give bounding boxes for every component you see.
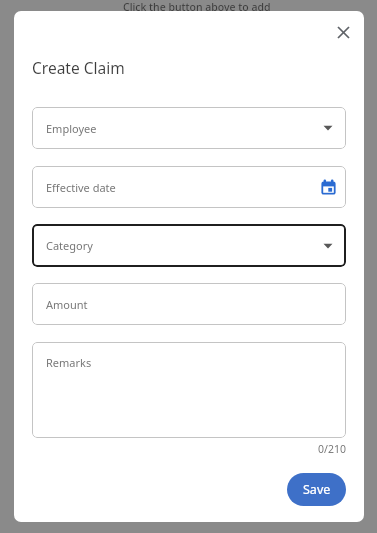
staticText: Remarks — [46, 355, 92, 370]
button[interactable]: Save — [287, 473, 346, 506]
staticText: Effective date — [46, 180, 116, 195]
button[interactable] — [328, 17, 358, 47]
button[interactable]: Amount — [32, 283, 346, 325]
staticText: Employee — [46, 121, 97, 136]
staticText: 0/210 — [318, 442, 346, 456]
button[interactable]: Category — [32, 224, 346, 267]
staticText: Amount — [46, 297, 88, 312]
staticText: Create Claim — [32, 57, 125, 78]
button[interactable]: Employee — [32, 107, 346, 149]
button[interactable]: Remarks — [32, 342, 346, 438]
staticText: Category — [46, 238, 93, 253]
button[interactable]: Effective date — [32, 166, 346, 208]
staticText: Click the button above to add — [123, 0, 271, 14]
staticText: Save — [303, 481, 331, 498]
